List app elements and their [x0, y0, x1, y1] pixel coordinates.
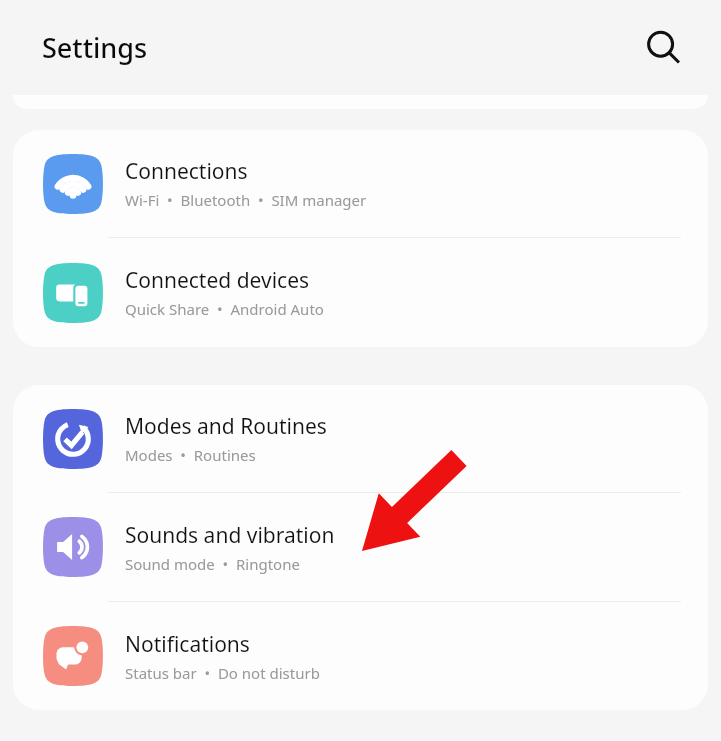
- staticText: Connected devices: [125, 266, 310, 295]
- staticText: Connections: [125, 157, 248, 186]
- button[interactable]: Sounds and vibration: [13, 493, 708, 601]
- button[interactable]: Search: [636, 20, 692, 76]
- staticText: Status bar • Do not disturb: [125, 663, 320, 683]
- staticText: Modes • Routines: [125, 445, 256, 465]
- button[interactable]: Modes and Routines: [13, 385, 708, 492]
- button[interactable]: Connections: [13, 130, 708, 237]
- staticText: Settings: [42, 29, 148, 66]
- button[interactable]: Connected devices: [13, 238, 708, 347]
- button[interactable]: Notifications: [13, 602, 708, 710]
- staticText: Modes and Routines: [125, 412, 327, 441]
- staticText: Sound mode • Ringtone: [125, 554, 300, 574]
- staticText: Sounds and vibration: [125, 521, 335, 550]
- staticText: Quick Share • Android Auto: [125, 299, 324, 319]
- staticText: Wi-Fi • Bluetooth • SIM manager: [125, 190, 367, 210]
- staticText: Notifications: [125, 630, 250, 659]
